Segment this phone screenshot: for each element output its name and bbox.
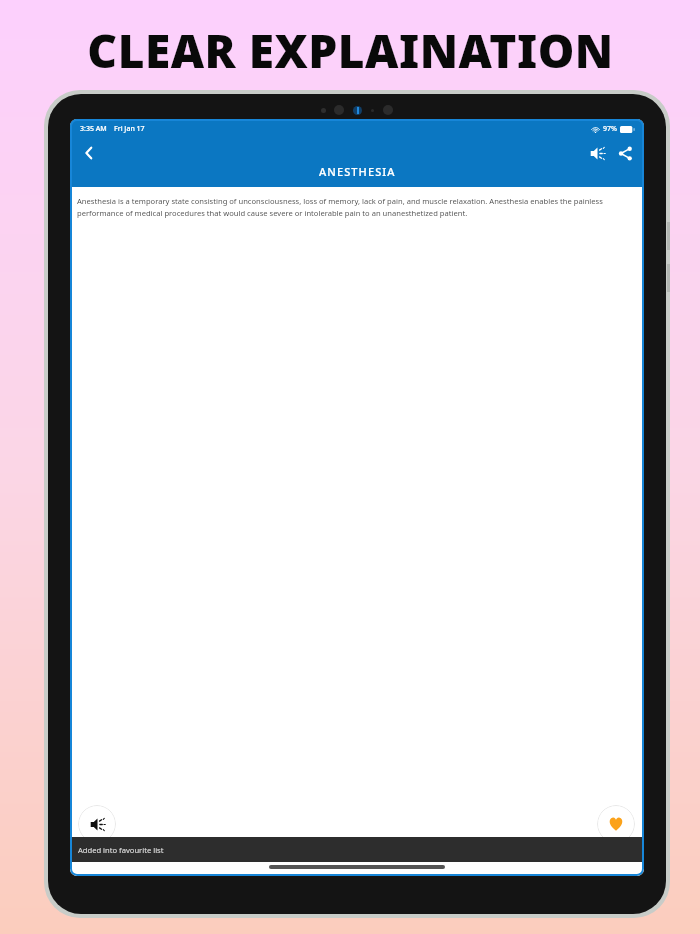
button[interactable]: Favourite	[597, 805, 635, 843]
button[interactable]: Play sound	[78, 805, 116, 843]
button[interactable]: Back	[75, 139, 103, 167]
staticText: Anesthesia is a temporary state consisti…	[77, 196, 637, 219]
staticText: 97%	[603, 124, 617, 134]
button[interactable]: Sound	[583, 139, 611, 167]
staticText: Added into favourite list	[78, 845, 164, 855]
button[interactable]: Share	[612, 140, 638, 166]
staticText: 3:35 AM	[80, 124, 107, 134]
staticText: ANESTHESIA	[319, 164, 396, 179]
staticText: Fri Jan 17	[114, 124, 145, 134]
staticText: CLEAR EXPLAINATION	[87, 19, 614, 82]
